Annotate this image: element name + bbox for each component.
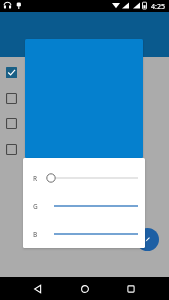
button[interactable]: G [23, 197, 145, 215]
button[interactable]: Unselected item [6, 93, 17, 104]
button[interactable]: Selected item [6, 67, 17, 78]
button[interactable]: Edit [136, 228, 159, 251]
button[interactable]: Home [79, 283, 91, 295]
button[interactable]: Unselected item [6, 118, 17, 129]
button[interactable]: Back [32, 283, 44, 295]
button[interactable]: R [23, 169, 145, 187]
staticText: R [33, 174, 38, 183]
staticText: G [33, 202, 38, 211]
staticText: B [33, 230, 38, 239]
button[interactable]: Recent apps [125, 283, 137, 295]
staticText: 4:25 [151, 2, 165, 12]
button[interactable]: Unselected item [6, 144, 17, 155]
button[interactable]: B [23, 225, 145, 243]
